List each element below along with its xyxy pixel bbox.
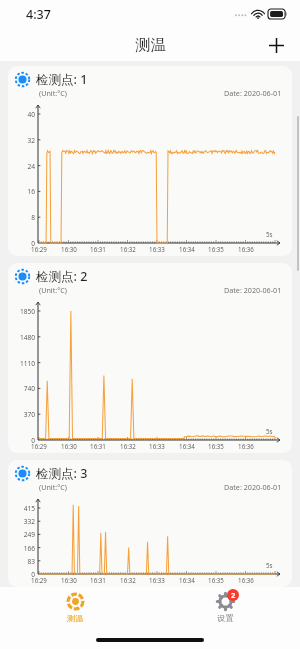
staticText: 8	[8, 213, 35, 222]
staticText: 16:29	[29, 245, 49, 253]
staticText: (Unit:°C)	[39, 482, 68, 492]
staticText: 5s	[266, 230, 273, 238]
staticText: 16:30	[59, 576, 79, 584]
staticText: 740	[8, 384, 35, 393]
staticText: 测温	[67, 613, 84, 623]
staticText: 0	[8, 239, 35, 248]
staticText: 16:36	[236, 576, 256, 584]
button[interactable]: 检测点: 3	[8, 460, 292, 587]
button[interactable]: 测温	[0, 592, 150, 623]
staticText: 16:29	[29, 442, 49, 450]
staticText: 1850	[8, 307, 35, 316]
staticText: 249	[8, 530, 35, 539]
staticText: 16:33	[147, 576, 167, 584]
staticText: (Unit:°C)	[39, 285, 68, 295]
staticText: Date: 2020-06-01	[224, 482, 282, 492]
staticText: 40	[8, 110, 35, 119]
staticText: 415	[8, 504, 35, 513]
staticText: 16:35	[206, 245, 226, 253]
button[interactable]: 检测点: 1	[8, 66, 292, 256]
button[interactable]: Add measurement point	[261, 30, 291, 60]
staticText: 16:32	[118, 442, 138, 450]
staticText: 332	[8, 517, 35, 526]
staticText: 16:30	[59, 442, 79, 450]
staticText: 2	[231, 590, 236, 600]
staticText: 16:29	[29, 576, 49, 584]
staticText: 1110	[8, 359, 35, 368]
staticText: 设置	[217, 613, 234, 623]
staticText: Date: 2020-06-01	[224, 88, 282, 98]
staticText: 4:37	[26, 6, 51, 23]
staticText: 16:31	[88, 442, 108, 450]
staticText: 16:34	[177, 245, 197, 253]
staticText: 32	[8, 136, 35, 145]
staticText: 16:31	[88, 576, 108, 584]
staticText: 16:33	[147, 245, 167, 253]
staticText: (Unit:°C)	[39, 88, 68, 98]
staticText: 16:30	[59, 245, 79, 253]
staticText: 16	[8, 187, 35, 196]
staticText: 测温	[135, 35, 166, 55]
staticText: Date: 2020-06-01	[224, 285, 282, 295]
staticText: 1480	[8, 333, 35, 342]
staticText: 370	[8, 410, 35, 419]
staticText: 5s	[266, 427, 273, 435]
staticText: 16:32	[118, 245, 138, 253]
staticText: 83	[8, 557, 35, 566]
staticText: 16:31	[88, 245, 108, 253]
staticText: 16:35	[206, 442, 226, 450]
staticText: 16:34	[177, 442, 197, 450]
staticText: 16:36	[236, 442, 256, 450]
staticText: 5s	[266, 561, 273, 569]
staticText: 检测点: 3	[36, 465, 88, 482]
staticText: 0	[8, 570, 35, 579]
staticText: 16:36	[236, 245, 256, 253]
button[interactable]: 检测点: 2	[8, 263, 292, 453]
staticText: 检测点: 2	[36, 268, 88, 285]
staticText: 16:35	[206, 576, 226, 584]
staticText: 24	[8, 162, 35, 171]
button[interactable]: 设置	[150, 592, 300, 623]
staticText: 16:33	[147, 442, 167, 450]
staticText: 0	[8, 436, 35, 445]
staticText: 16:32	[118, 576, 138, 584]
staticText: 166	[8, 544, 35, 553]
staticText: 16:34	[177, 576, 197, 584]
staticText: 检测点: 1	[36, 71, 88, 88]
